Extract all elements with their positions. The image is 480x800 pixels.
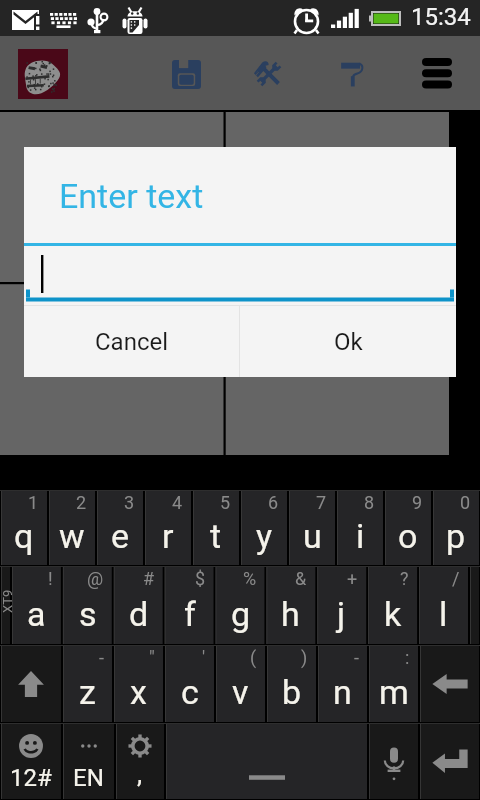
- button[interactable]: 9: [384, 490, 432, 566]
- staticText: j: [337, 594, 346, 634]
- staticText: XT9: [0, 589, 12, 613]
- staticText: !: [48, 568, 53, 589]
- staticText: %: [243, 568, 257, 589]
- staticText: b: [282, 672, 302, 712]
- staticText: $: [195, 568, 206, 589]
- staticText: -: [354, 647, 359, 668]
- button[interactable]: Enter: [419, 723, 480, 800]
- staticText: e: [111, 516, 130, 556]
- button[interactable]: 5: [192, 490, 240, 566]
- staticText: EN: [73, 764, 104, 792]
- staticText: z: [79, 672, 96, 712]
- button[interactable]: 3: [96, 490, 144, 566]
- staticText: 2: [76, 492, 87, 513]
- staticText: m: [379, 672, 409, 712]
- staticText: +: [347, 568, 358, 589]
- staticText: k: [384, 594, 402, 634]
- staticText: n: [333, 672, 352, 712]
- button[interactable]: Paint: [325, 36, 380, 110]
- button[interactable]: +: [316, 566, 367, 645]
- button[interactable]: 0: [432, 490, 480, 566]
- button[interactable]: @: [62, 566, 113, 645]
- button[interactable]: #: [113, 566, 164, 645]
- button[interactable]: [0, 566, 11, 645]
- button[interactable]: Backspace: [419, 645, 480, 723]
- button[interactable]: !: [11, 566, 62, 645]
- staticText: u: [303, 516, 322, 556]
- button[interactable]: /: [418, 566, 469, 645]
- staticText: 9: [412, 492, 423, 513]
- button[interactable]: (: [215, 645, 266, 723]
- button[interactable]: App icon: [18, 49, 68, 99]
- staticText: v: [232, 672, 249, 712]
- staticText: c: [181, 672, 199, 712]
- button[interactable]: -: [317, 645, 368, 723]
- staticText: 3: [124, 492, 135, 513]
- staticText: t: [210, 516, 222, 556]
- staticText: 8: [364, 492, 375, 513]
- button[interactable]: -: [62, 645, 113, 723]
- button[interactable]: ": [113, 645, 164, 723]
- staticText: r: [162, 516, 174, 556]
- staticText: Ok: [334, 328, 363, 356]
- button[interactable]: ?: [367, 566, 418, 645]
- button[interactable]: Space: [165, 723, 368, 800]
- staticText: h: [281, 594, 300, 634]
- staticText: Enter text: [59, 176, 204, 216]
- staticText: f: [184, 594, 196, 634]
- staticText: /: [452, 568, 460, 589]
- staticText: y: [256, 516, 273, 556]
- button[interactable]: More options: [408, 36, 466, 110]
- staticText: 4: [172, 492, 183, 513]
- staticText: ,: [137, 759, 143, 789]
- staticText: ": [149, 647, 155, 668]
- staticText: 0: [460, 492, 471, 513]
- staticText: 6: [268, 492, 279, 513]
- button[interactable]: :: [368, 645, 419, 723]
- button[interactable]: %: [215, 566, 266, 645]
- staticText: p: [446, 516, 466, 556]
- button[interactable]: Ok: [240, 306, 456, 377]
- staticText: a: [27, 594, 46, 634]
- button[interactable]: 2: [48, 490, 96, 566]
- button[interactable]: Voice input: [368, 723, 419, 800]
- staticText: ': [202, 647, 206, 668]
- staticText: g: [231, 594, 251, 634]
- staticText: s: [79, 594, 97, 634]
- staticText: Cancel: [95, 328, 169, 356]
- staticText: ): [301, 647, 308, 668]
- button[interactable]: ): [266, 645, 317, 723]
- staticText: ?: [400, 568, 409, 589]
- button[interactable]: Save: [158, 36, 215, 110]
- button[interactable]: &: [265, 566, 316, 645]
- button[interactable]: Shift: [0, 645, 62, 723]
- button[interactable]: 4: [144, 490, 192, 566]
- staticText: 15:34: [411, 3, 471, 31]
- staticText: w: [59, 516, 85, 556]
- button[interactable]: ': [164, 645, 215, 723]
- staticText: o: [398, 516, 418, 556]
- staticText: -: [99, 647, 104, 668]
- staticText: 1: [28, 492, 39, 513]
- staticText: x: [130, 672, 147, 712]
- button[interactable]: 6: [240, 490, 288, 566]
- button[interactable]: $: [164, 566, 215, 645]
- button[interactable]: 7: [288, 490, 336, 566]
- staticText: l: [439, 594, 448, 634]
- button[interactable]: Symbols: [0, 723, 62, 800]
- button[interactable]: [469, 566, 480, 645]
- button[interactable]: Tools: [241, 36, 297, 110]
- staticText: i: [356, 516, 365, 556]
- staticText: q: [14, 516, 34, 556]
- button[interactable]: Settings: [115, 723, 165, 800]
- button[interactable]: 8: [336, 490, 384, 566]
- button[interactable]: Language: [62, 723, 115, 800]
- staticText: &: [295, 568, 307, 589]
- staticText: 12#: [10, 764, 52, 792]
- staticText: 5: [220, 492, 231, 513]
- button[interactable]: Cancel: [24, 306, 239, 377]
- button[interactable]: 1: [0, 490, 48, 566]
- staticText: @: [87, 568, 104, 589]
- staticText: (: [250, 647, 257, 668]
- staticText: d: [129, 594, 149, 634]
